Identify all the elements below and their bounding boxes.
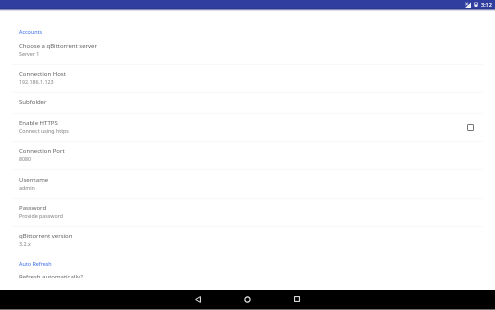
button[interactable]: Recent apps <box>288 290 306 308</box>
button[interactable]: Subfolder <box>0 93 495 114</box>
button[interactable]: Connection Host <box>0 65 495 93</box>
staticText: admin <box>19 184 35 191</box>
button[interactable]: Choose a qBittorrent server <box>0 37 495 65</box>
staticText: Username <box>19 176 49 184</box>
staticText: Connection Port <box>19 147 65 155</box>
staticText: Auto Refresh <box>19 260 52 267</box>
staticText: Accounts <box>19 28 43 35</box>
staticText: Password <box>19 204 47 212</box>
staticText: Connect using https <box>19 127 69 134</box>
staticText: 8080 <box>19 155 32 162</box>
staticText: Refresh automatically? <box>19 273 83 278</box>
button[interactable]: Connection Port <box>0 142 495 170</box>
button[interactable]: Username <box>0 171 495 199</box>
button[interactable]: Password <box>0 199 495 227</box>
staticText: Enable HTTPS <box>19 119 58 127</box>
button[interactable]: Back <box>189 290 207 308</box>
staticText: Subfolder <box>19 98 47 106</box>
button[interactable]: Enable HTTPS <box>0 114 495 142</box>
staticText: qBittorrent version <box>19 232 73 240</box>
staticText: 192.186.1.123 <box>19 78 54 85</box>
button[interactable]: Home <box>238 290 256 308</box>
button[interactable]: qBittorrent version <box>0 227 495 255</box>
staticText: 3.2.x <box>19 240 31 247</box>
staticText: Connection Host <box>19 70 66 78</box>
button[interactable]: Refresh automatically? <box>0 268 495 278</box>
staticText: Provide password <box>19 212 64 219</box>
staticText: Choose a qBittorrent server <box>19 42 97 50</box>
staticText: 3:12 <box>481 1 492 8</box>
staticText: Server 1 <box>19 50 40 57</box>
